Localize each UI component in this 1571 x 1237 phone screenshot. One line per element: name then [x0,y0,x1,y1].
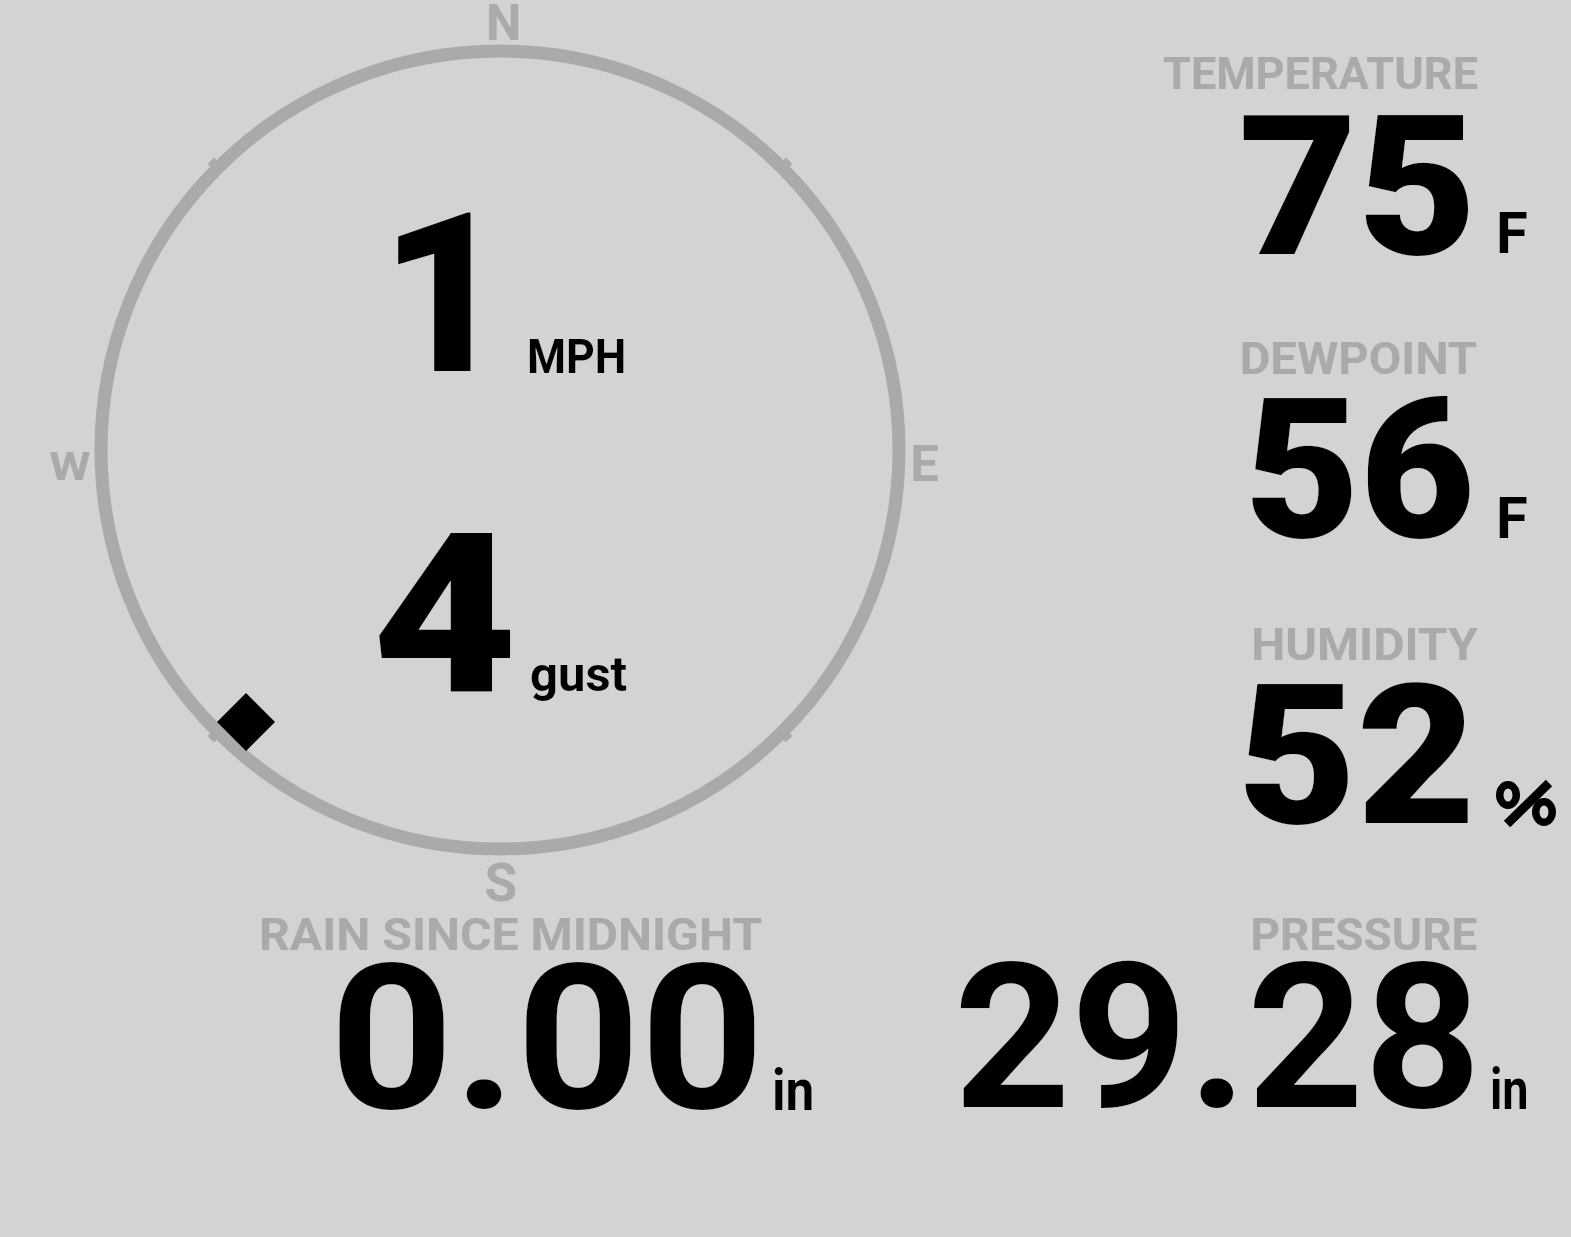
button[interactable]: Humidity 52 percent [1100,600,1560,840]
button[interactable]: Pressure 29.28 in [930,900,1550,1130]
button[interactable]: Wind 1 MPH gusting 4, direction south we… [88,38,914,864]
button[interactable]: Temperature 75 F [1100,30,1560,270]
button[interactable]: Rain since midnight 0.00 in [250,900,830,1130]
button[interactable]: Dewpoint 56 F [1100,315,1560,555]
